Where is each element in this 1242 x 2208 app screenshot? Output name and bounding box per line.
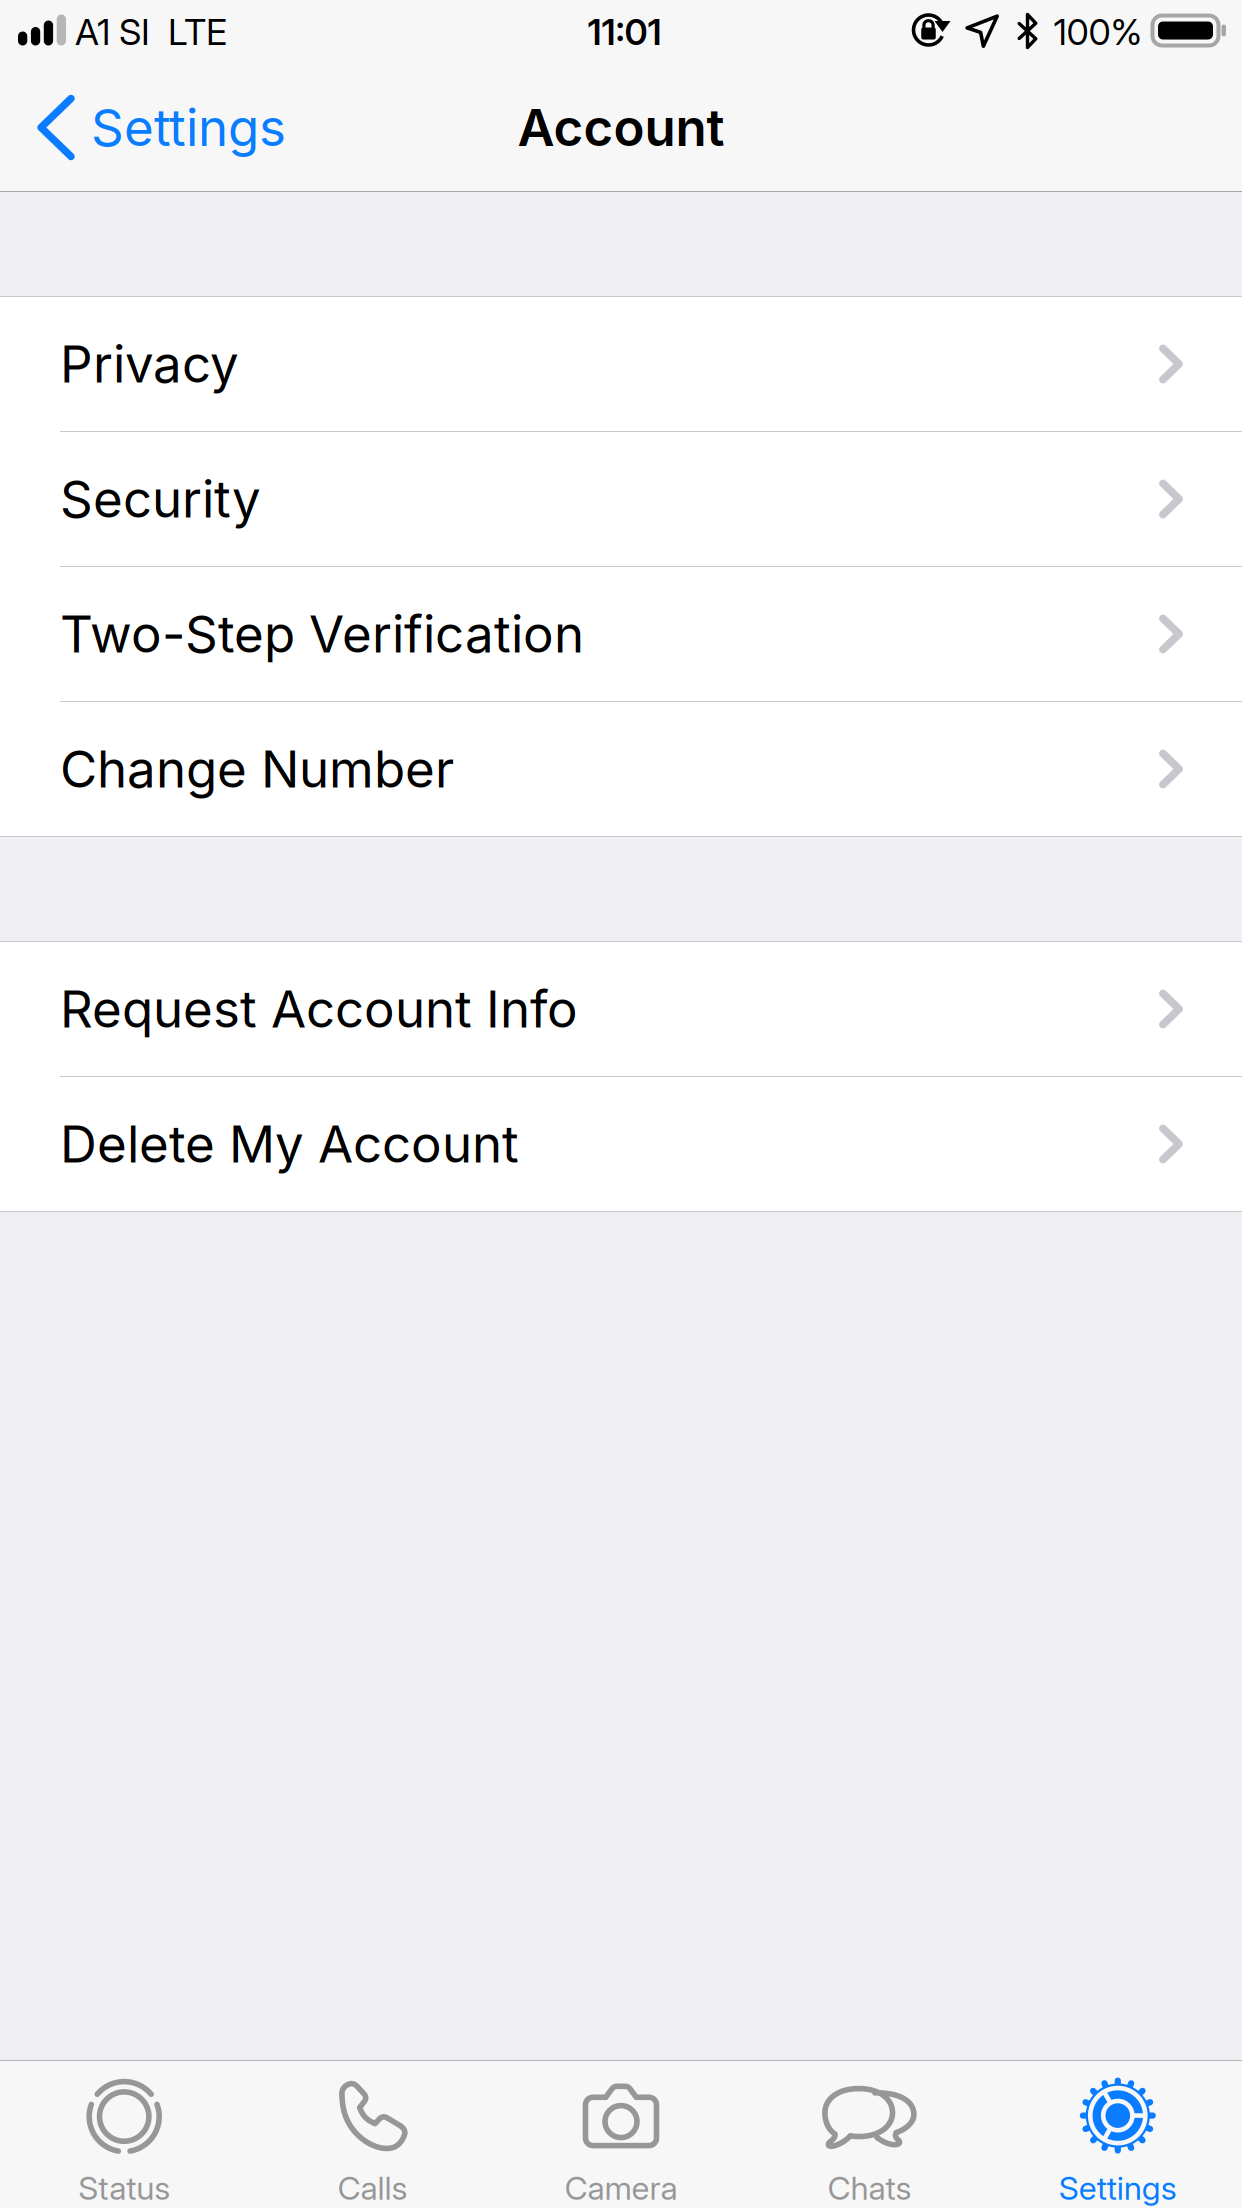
staticText: A1 SI LTE bbox=[75, 10, 227, 54]
button[interactable]: Privacy bbox=[0, 297, 1242, 432]
staticText: Account bbox=[517, 97, 724, 158]
button[interactable]: Camera bbox=[497, 2062, 745, 2207]
button[interactable]: Request Account Info bbox=[0, 942, 1242, 1077]
staticText: Status bbox=[78, 2169, 170, 2207]
button[interactable]: Change Number bbox=[0, 702, 1242, 836]
button[interactable]: Chats bbox=[745, 2062, 994, 2207]
button[interactable]: Calls bbox=[248, 2062, 497, 2207]
staticText: Settings bbox=[91, 97, 286, 158]
staticText: Security bbox=[60, 468, 261, 530]
staticText: Request Account Info bbox=[60, 978, 578, 1040]
staticText: 11:01 bbox=[587, 10, 661, 54]
staticText: Privacy bbox=[60, 333, 239, 395]
staticText: Settings bbox=[1059, 2169, 1177, 2207]
button[interactable]: Status bbox=[0, 2062, 248, 2207]
staticText: Change Number bbox=[60, 738, 454, 800]
button[interactable]: Delete My Account bbox=[0, 1077, 1242, 1211]
button[interactable]: Settings bbox=[0, 77, 286, 178]
staticText: Two-Step Verification bbox=[60, 603, 584, 665]
staticText: Delete My Account bbox=[60, 1113, 519, 1175]
staticText: Calls bbox=[338, 2169, 408, 2207]
staticText: Camera bbox=[564, 2169, 677, 2207]
button[interactable]: Security bbox=[0, 432, 1242, 567]
staticText: 100% bbox=[1053, 10, 1142, 54]
button[interactable]: Two-Step Verification bbox=[0, 567, 1242, 702]
button[interactable]: Settings bbox=[994, 2062, 1242, 2207]
staticText: Chats bbox=[827, 2169, 911, 2207]
